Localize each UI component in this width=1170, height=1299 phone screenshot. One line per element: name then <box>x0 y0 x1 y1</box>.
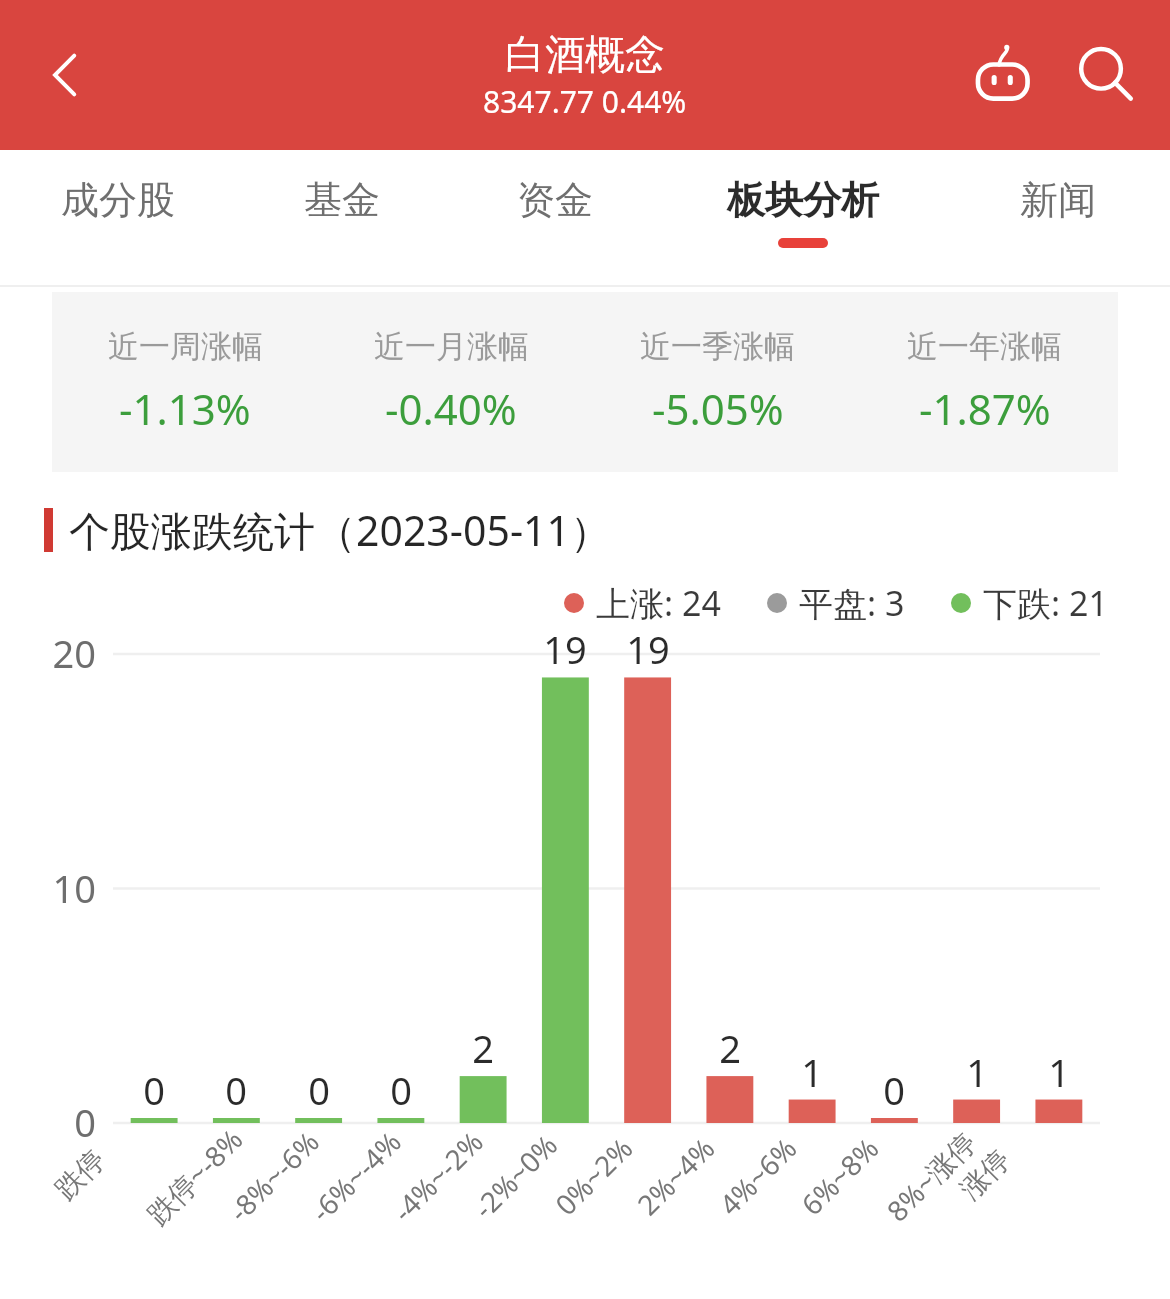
button[interactable]: 近一周涨幅 <box>52 327 318 437</box>
staticText: 0 <box>109 1064 199 1116</box>
staticText: 上涨: 24 <box>596 580 721 626</box>
staticText: 基金 <box>304 176 380 224</box>
staticText: 0%~2% <box>546 1129 640 1223</box>
button[interactable]: AI assistant <box>958 29 1050 121</box>
staticText: -1.87% <box>919 380 1051 437</box>
staticText: 近一季涨幅 <box>640 327 795 366</box>
button[interactable]: 新闻 <box>945 150 1170 280</box>
staticText: 平盘: 3 <box>799 580 905 626</box>
staticText: -5.05% <box>652 380 784 437</box>
staticText: 0 <box>274 1064 364 1116</box>
button[interactable]: 下跌: 21 <box>951 580 1108 626</box>
button[interactable]: 近一年涨幅 <box>851 327 1118 437</box>
staticText: 1 <box>1014 1046 1104 1098</box>
staticText: 新闻 <box>1020 176 1096 224</box>
staticText: 资金 <box>517 176 593 224</box>
button[interactable]: 近一季涨幅 <box>584 327 851 437</box>
staticText: 下跌: 21 <box>983 580 1108 626</box>
staticText: -2%~0% <box>465 1126 565 1226</box>
staticText: 2 <box>685 1022 775 1074</box>
staticText: -0.40% <box>385 380 517 437</box>
staticText: 8347.77 0.44% <box>483 81 687 122</box>
staticText: 0 <box>191 1064 281 1116</box>
staticText: 0 <box>0 1096 96 1148</box>
button[interactable]: 基金 <box>235 150 448 280</box>
staticText: 白酒概念 <box>505 29 665 79</box>
staticText: 近一周涨幅 <box>108 327 263 366</box>
staticText: 20 <box>0 627 96 679</box>
staticText: 19 <box>520 623 610 675</box>
staticText: 19 <box>603 623 693 675</box>
staticText: 成分股 <box>61 176 175 224</box>
staticText: 10 <box>0 862 96 914</box>
staticText: 跌停 <box>48 1142 112 1207</box>
staticText: 1 <box>767 1046 857 1098</box>
button[interactable]: Search <box>1060 29 1152 121</box>
button[interactable]: 近一月涨幅 <box>318 327 584 437</box>
button[interactable]: 板块分析 <box>661 150 945 280</box>
staticText: 6%~8% <box>792 1129 886 1223</box>
button[interactable]: 成分股 <box>0 150 235 280</box>
button[interactable]: 平盘: 3 <box>767 580 905 626</box>
staticText: 8%~涨停 <box>878 1123 984 1229</box>
staticText: 4%~6% <box>710 1129 804 1223</box>
staticText: -6%~-4% <box>302 1123 409 1229</box>
staticText: 近一年涨幅 <box>907 327 1062 366</box>
staticText: 跌停~-8% <box>138 1120 251 1232</box>
staticText: -4%~-2% <box>384 1123 491 1229</box>
staticText: 近一月涨幅 <box>374 327 529 366</box>
staticText: 1 <box>932 1046 1022 1098</box>
staticText: 2%~4% <box>628 1129 722 1223</box>
staticText: -1.13% <box>119 380 251 437</box>
staticText: 个股涨跌统计（2023-05-11） <box>69 502 612 558</box>
staticText: 0 <box>849 1064 939 1116</box>
staticText: -8%~-6% <box>220 1123 327 1229</box>
staticText: 0 <box>356 1064 446 1116</box>
staticText: 板块分析 <box>727 176 879 224</box>
button[interactable]: 上涨: 24 <box>564 580 721 626</box>
staticText: 2 <box>438 1022 528 1074</box>
button[interactable]: 资金 <box>448 150 661 280</box>
button[interactable]: Back <box>20 29 112 121</box>
staticText: 涨停 <box>953 1142 1017 1207</box>
